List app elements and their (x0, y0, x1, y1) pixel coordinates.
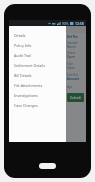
staticText: Date (67, 62, 74, 66)
button[interactable]: Settlement Details (9, 60, 66, 70)
staticText: Investigations (14, 93, 38, 98)
staticText: Case Changes (14, 103, 38, 108)
staticText: Total Est (67, 73, 78, 77)
staticText: Value (67, 66, 75, 70)
staticText: Ref No (67, 35, 78, 39)
staticText: Status (67, 51, 76, 55)
staticText: Details (14, 33, 26, 38)
button[interactable]: File Attachments (9, 80, 66, 90)
staticText: File Attachments (14, 83, 43, 88)
button[interactable]: Details (9, 30, 66, 40)
staticText: Policy Info (14, 43, 32, 48)
staticText: Submit (70, 96, 81, 100)
staticText: 90% (62, 22, 69, 26)
staticText: Open (67, 55, 75, 59)
staticText: Bill Details (14, 73, 32, 78)
staticText: Name (67, 45, 76, 49)
staticText: Settlement Details (14, 63, 45, 68)
staticText: Age (67, 85, 73, 89)
staticText: Amount (67, 77, 80, 81)
staticText: 12:58 (75, 21, 84, 26)
button[interactable]: Case Changes (9, 100, 66, 110)
button[interactable]: Home (39, 163, 56, 169)
button[interactable]: Policy Info (9, 40, 66, 50)
button[interactable]: Bill Details (9, 70, 66, 80)
button[interactable]: Audit Trail (9, 50, 66, 60)
staticText: Audit Trail (14, 53, 31, 58)
button[interactable]: Investigations (9, 90, 66, 100)
button[interactable]: Submit (67, 93, 84, 102)
staticText: Insured (67, 41, 78, 45)
